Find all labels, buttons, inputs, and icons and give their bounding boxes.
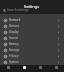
other: You	[55, 66, 58, 69]
button[interactable]: System	[0, 59, 64, 65]
staticText: Storage	[9, 48, 20, 52]
staticText: Privacy	[9, 54, 19, 58]
staticText: Settings	[24, 4, 40, 9]
other: Open Battery	[57, 43, 60, 46]
button[interactable]: Chat	[35, 65, 45, 72]
staticText: System	[9, 60, 19, 64]
button[interactable]: Search	[3, 8, 29, 12]
other: Apps	[23, 66, 26, 69]
button[interactable]: Home	[3, 65, 13, 72]
staticText: Display	[9, 30, 19, 34]
other: Open Privacy	[57, 55, 60, 58]
button[interactable]: Devices	[0, 23, 64, 29]
button[interactable]: Display	[0, 29, 64, 35]
other: Open Storage	[57, 49, 60, 52]
staticText: Search settings	[7, 8, 29, 12]
other: Home	[7, 66, 10, 69]
other: Search	[3, 9, 6, 12]
other: Open Network	[57, 19, 60, 22]
button[interactable]: You	[51, 65, 61, 72]
staticText: Battery	[9, 42, 19, 46]
other: Open Display	[57, 31, 60, 34]
button[interactable]: Privacy	[0, 53, 64, 59]
button[interactable]: Battery	[0, 41, 64, 47]
button[interactable]: Network	[0, 17, 64, 23]
button[interactable]: Sound	[0, 35, 64, 41]
button[interactable]: Apps	[19, 65, 29, 72]
other: Chat	[39, 66, 42, 69]
button[interactable]: Storage	[0, 47, 64, 53]
staticText: Network	[9, 18, 21, 22]
staticText: Sound	[9, 36, 18, 40]
other: Open System	[57, 61, 60, 64]
staticText: Devices	[9, 24, 19, 28]
other: Open Sound	[57, 37, 60, 40]
other: Open Devices	[57, 25, 60, 28]
